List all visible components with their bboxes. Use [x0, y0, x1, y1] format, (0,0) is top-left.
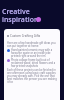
staticText: inspiration	[2, 15, 39, 24]
staticText: Custom Crafting Gifts	[10, 34, 41, 38]
staticText: Photo collage frame built out of reclaim…	[11, 58, 57, 67]
other: Assistant avatar	[36, 17, 41, 22]
staticText: Each of these projects can be finished i…	[7, 68, 57, 83]
staticText: Creative	[2, 7, 30, 16]
staticText: Here are a few handmade gift ideas you c…	[7, 41, 57, 47]
button[interactable]: Custom Crafting Gifts	[7, 34, 57, 38]
staticText: Hand painted ceramic mug with a favourit…	[11, 48, 57, 57]
